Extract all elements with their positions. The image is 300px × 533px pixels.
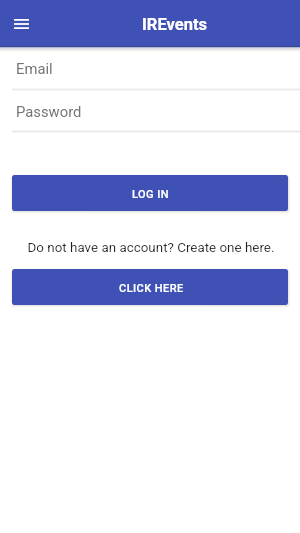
button[interactable]: CLICK HERE xyxy=(12,269,288,305)
button[interactable]: Open navigation menu xyxy=(5,8,37,40)
staticText: CLICK HERE xyxy=(119,282,184,295)
staticText: Do not have an account? Create one here. xyxy=(1,240,300,256)
staticText: IREvents xyxy=(142,15,207,34)
staticText: Email xyxy=(16,60,53,77)
button[interactable]: Password xyxy=(0,89,300,132)
staticText: LOG IN xyxy=(132,188,170,201)
staticText: Password xyxy=(16,103,82,120)
button[interactable]: Email xyxy=(0,46,300,90)
button[interactable]: LOG IN xyxy=(12,175,288,211)
